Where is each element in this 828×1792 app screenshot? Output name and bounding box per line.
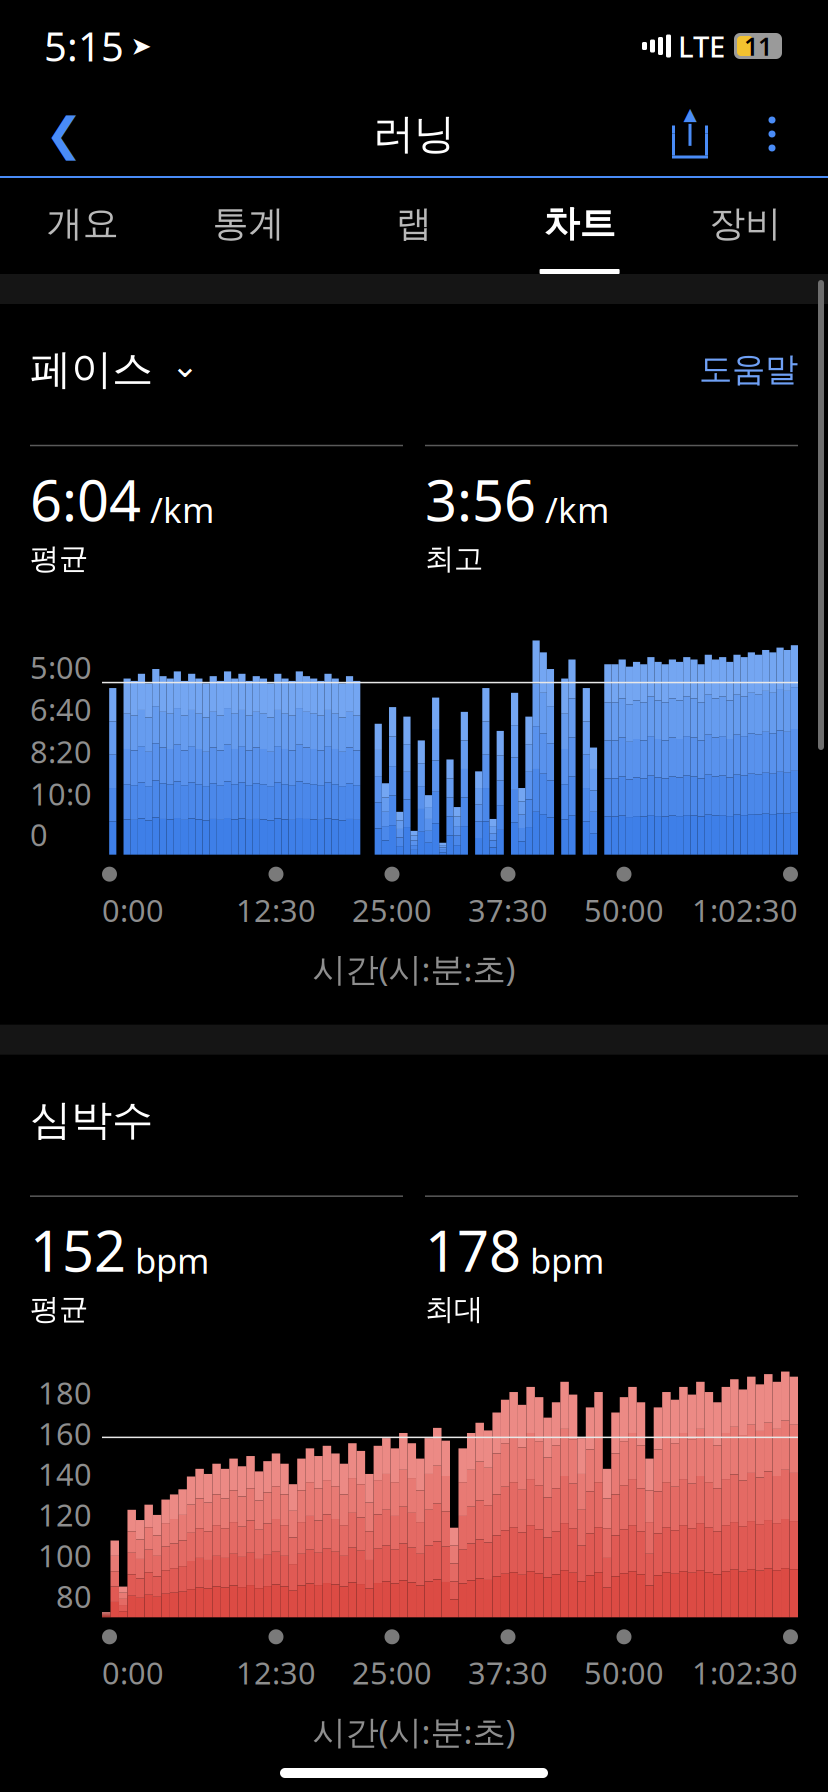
staticText: 1:02:30: [692, 1652, 798, 1693]
staticText: 최고: [425, 541, 483, 577]
staticText: 140: [38, 1454, 92, 1494]
button[interactable]: 공유: [648, 92, 732, 176]
staticText: 37:30: [468, 890, 548, 930]
staticText: 11: [744, 29, 772, 63]
staticText: 80: [56, 1576, 92, 1616]
staticText: 12:30: [236, 1652, 316, 1693]
button[interactable]: 통계: [166, 178, 331, 274]
staticText: 12:30: [236, 890, 316, 930]
button[interactable]: 페이스: [30, 344, 199, 395]
staticText: 120: [38, 1494, 92, 1535]
staticText: 평균: [30, 541, 88, 577]
staticText: 심박수: [30, 1095, 153, 1145]
staticText: 25:00: [352, 890, 432, 930]
staticText: ⌄: [171, 346, 199, 384]
button[interactable]: 도움말: [699, 349, 798, 390]
staticText: 3:56: [425, 462, 536, 537]
staticText: 0:00: [102, 1652, 164, 1693]
staticText: 180: [38, 1372, 92, 1413]
staticText: 최대: [425, 1291, 483, 1327]
staticText: ➤: [130, 32, 151, 60]
staticText: 5:00: [30, 647, 92, 687]
button[interactable]: 차트: [497, 178, 662, 274]
staticText: 8:20: [30, 731, 92, 772]
staticText: 랩: [396, 201, 432, 246]
button[interactable]: 장비: [662, 178, 828, 274]
staticText: 178: [425, 1213, 521, 1287]
staticText: 37:30: [468, 1652, 548, 1693]
staticText: 시간(시:분:초): [312, 1709, 515, 1753]
staticText: 러닝: [373, 109, 455, 159]
staticText: 6:04: [30, 462, 141, 537]
staticText: 0:00: [102, 890, 164, 930]
staticText: 50:00: [584, 1652, 664, 1693]
staticText: ❮: [45, 108, 83, 160]
staticText: 10:00: [30, 773, 92, 855]
staticText: /km: [545, 487, 609, 533]
staticText: bpm: [135, 1237, 209, 1283]
staticText: bpm: [530, 1237, 604, 1283]
staticText: 통계: [212, 201, 284, 246]
staticText: 개요: [47, 201, 119, 246]
staticText: 152: [30, 1213, 126, 1287]
staticText: /km: [150, 487, 214, 533]
staticText: 1:02:30: [692, 890, 798, 930]
staticText: 5:15: [44, 19, 124, 72]
staticText: 25:00: [352, 1652, 432, 1693]
button[interactable]: 개요: [0, 178, 166, 274]
button[interactable]: 랩: [331, 178, 497, 274]
staticText: 도움말: [699, 349, 798, 390]
staticText: 차트: [544, 201, 616, 246]
staticText: 160: [38, 1413, 92, 1454]
staticText: LTE: [678, 26, 725, 65]
staticText: 50:00: [584, 890, 664, 930]
button[interactable]: 뒤로: [16, 92, 112, 176]
button[interactable]: 추가 옵션: [732, 92, 812, 176]
staticText: 100: [38, 1535, 92, 1576]
staticText: 평균: [30, 1291, 88, 1327]
staticText: 시간(시:분:초): [312, 946, 515, 991]
staticText: 6:40: [30, 689, 92, 729]
staticText: ▲: [683, 104, 696, 124]
staticText: 장비: [709, 201, 781, 246]
staticText: 페이스: [30, 344, 153, 395]
